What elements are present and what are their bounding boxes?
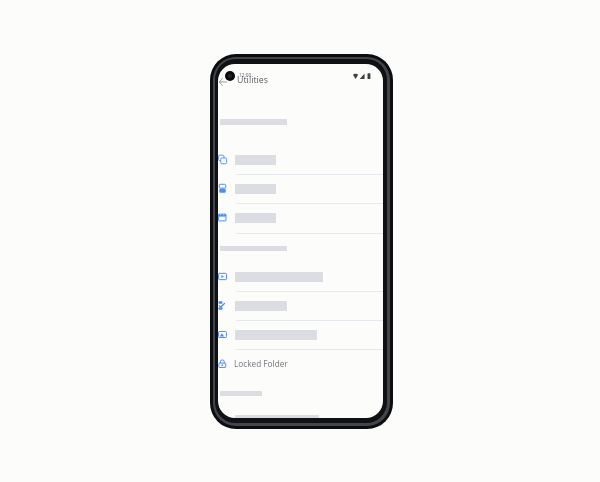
button[interactable]: Locked Folder — [218, 349, 383, 378]
button[interactable] — [218, 320, 383, 349]
staticText: Locked Folder — [234, 358, 288, 369]
button[interactable] — [218, 262, 383, 291]
button[interactable]: Back — [218, 76, 229, 88]
button[interactable] — [218, 203, 383, 232]
staticText: Utilities — [237, 74, 269, 86]
button[interactable] — [218, 291, 383, 320]
staticText: 12:00 — [239, 72, 252, 79]
button[interactable] — [218, 174, 383, 203]
button[interactable] — [218, 145, 383, 174]
